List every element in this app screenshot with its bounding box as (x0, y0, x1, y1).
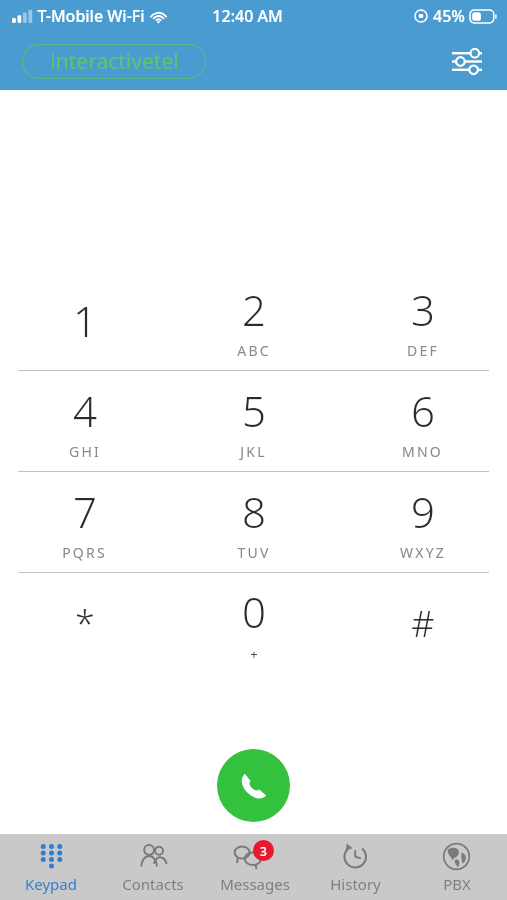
staticText: 3 (411, 281, 435, 338)
staticText: 7 (73, 483, 97, 540)
staticText: JKL (240, 442, 267, 461)
button[interactable]: 8 (169, 472, 338, 572)
staticText: GHI (69, 442, 101, 461)
staticText: * (75, 599, 95, 648)
button[interactable]: PBX (406, 834, 507, 900)
staticText: ABC (237, 341, 271, 360)
button[interactable]: 3 (338, 270, 507, 370)
staticText: 0 (242, 583, 266, 640)
staticText: 3 (260, 843, 267, 859)
button[interactable]: 7 (0, 472, 169, 572)
staticText: PQRS (62, 543, 107, 562)
staticText: 12:40 AM (212, 5, 283, 27)
staticText: 6 (411, 382, 435, 439)
button[interactable]: 9 (338, 472, 507, 572)
button[interactable]: interactivetel (22, 44, 206, 79)
staticText: Keypad (25, 874, 77, 894)
button[interactable]: Call (217, 749, 290, 822)
staticText: interactivetel (50, 47, 179, 76)
button[interactable]: 5 (169, 371, 338, 471)
button[interactable]: * (0, 573, 169, 673)
staticText: 1 (73, 292, 97, 349)
button[interactable]: 2 (169, 270, 338, 370)
button[interactable]: 1 (0, 270, 169, 370)
button[interactable]: 3 (204, 834, 305, 900)
button[interactable]: Settings (441, 35, 493, 87)
staticText: MNO (402, 442, 443, 461)
staticText: DEF (407, 341, 439, 360)
button[interactable]: Keypad (0, 834, 102, 900)
button[interactable]: 0 (169, 573, 338, 673)
staticText: Messages (220, 874, 290, 894)
staticText: 2 (242, 281, 266, 338)
staticText: History (330, 874, 381, 894)
staticText: TUV (237, 543, 271, 562)
staticText: WXYZ (400, 543, 446, 562)
button[interactable]: Contacts (102, 834, 204, 900)
staticText: 5 (242, 382, 266, 439)
staticText: PBX (443, 874, 471, 894)
button[interactable]: 4 (0, 371, 169, 471)
staticText: 4 (73, 382, 97, 439)
button[interactable]: # (338, 573, 507, 673)
staticText: 8 (242, 483, 266, 540)
staticText: 9 (411, 483, 435, 540)
staticText: # (411, 599, 435, 648)
button[interactable]: 6 (338, 371, 507, 471)
staticText: + (250, 645, 258, 663)
staticText: T-Mobile Wi-Fi (37, 5, 145, 27)
staticText: Contacts (122, 874, 184, 894)
button[interactable]: History (305, 834, 406, 900)
staticText: 45% (433, 5, 465, 27)
